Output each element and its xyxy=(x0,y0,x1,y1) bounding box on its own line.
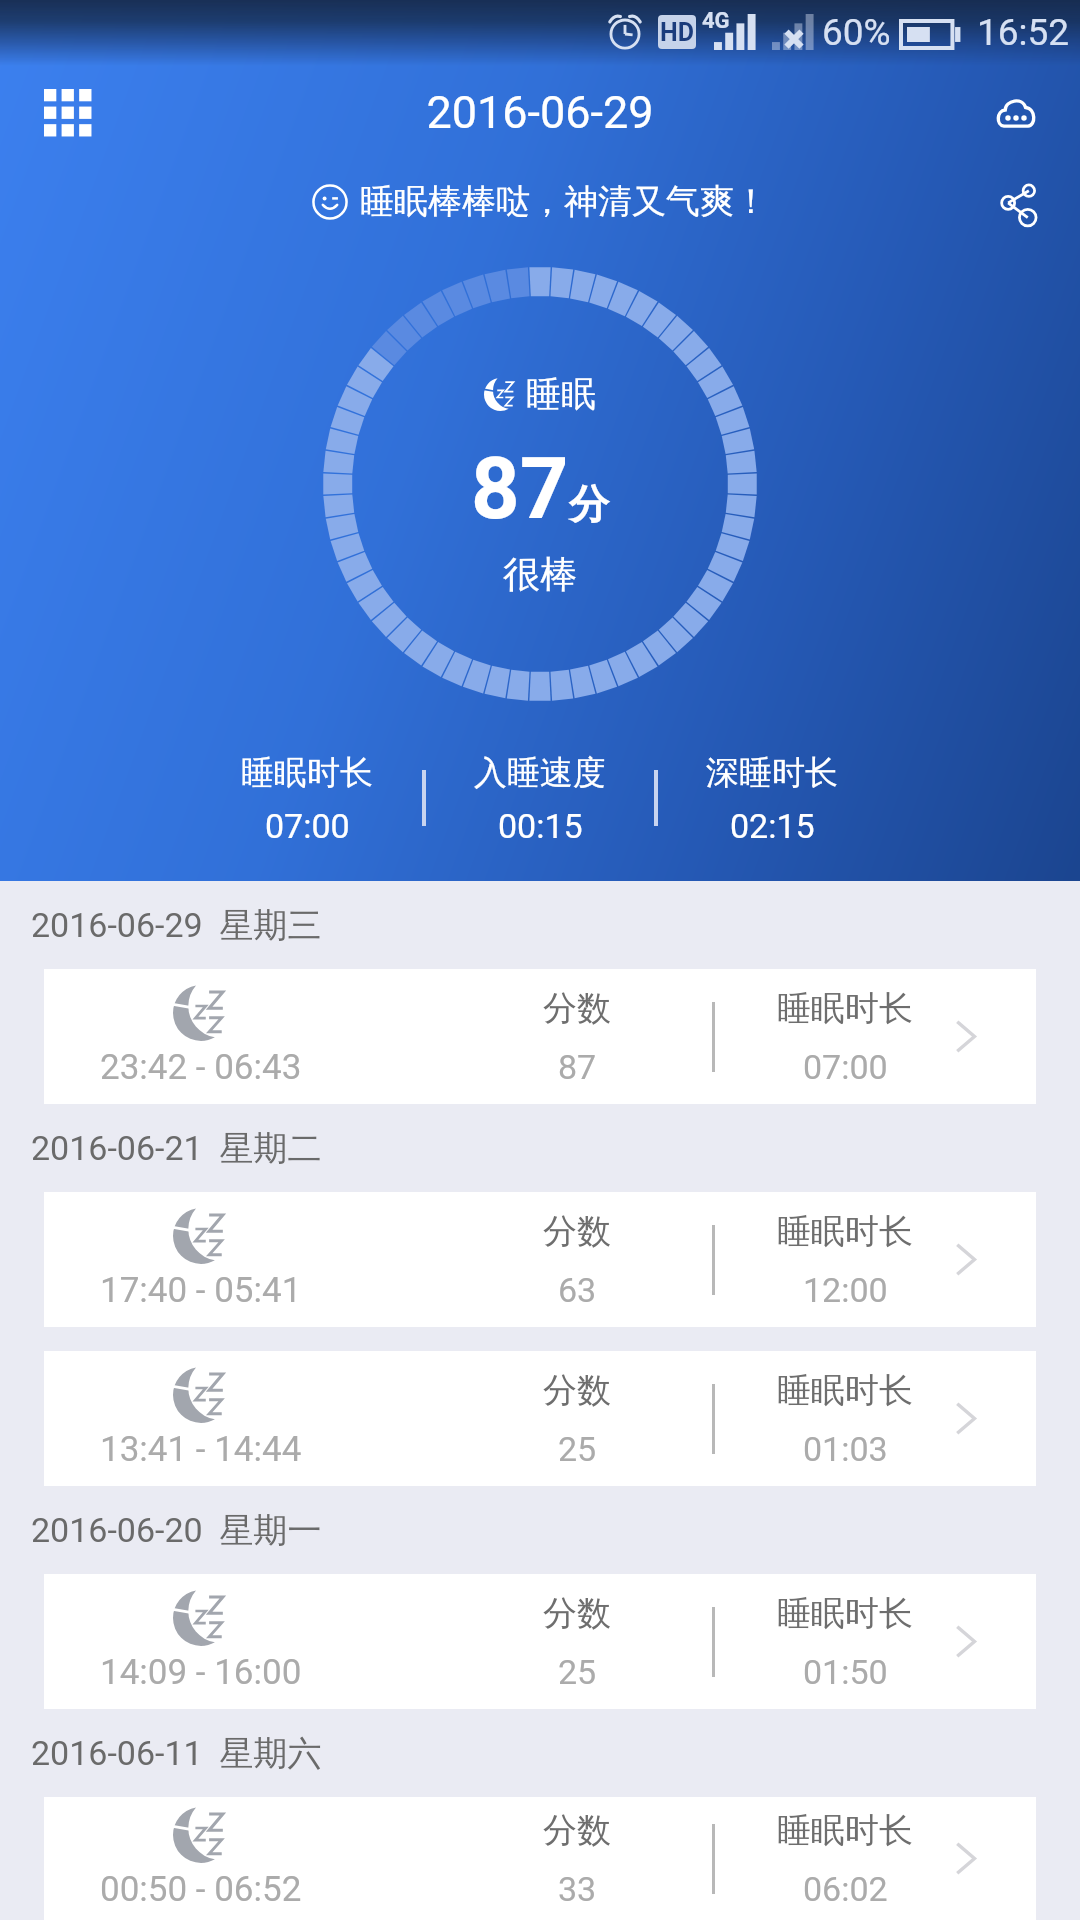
staticText: 分 xyxy=(569,479,609,529)
button[interactable]: 00:50 - 06:52 xyxy=(44,1797,1036,1920)
staticText: 睡眠时长 xyxy=(777,1809,913,1852)
staticText: 睡眠时长 xyxy=(777,987,913,1030)
staticText: 分数 xyxy=(543,1592,611,1635)
button[interactable]: 13:41 - 14:44 xyxy=(44,1351,1036,1486)
staticText: 02:15 xyxy=(730,806,815,846)
staticText: 13:41 - 14:44 xyxy=(100,1429,302,1470)
staticText: HD xyxy=(660,18,694,47)
staticText: 25 xyxy=(558,1429,597,1469)
staticText: 12:00 xyxy=(803,1270,888,1310)
staticText: 07:00 xyxy=(803,1047,888,1087)
staticText: 4G xyxy=(702,8,730,34)
staticText: 17:40 - 05:41 xyxy=(100,1270,302,1311)
staticText: 入睡速度 xyxy=(474,752,606,794)
staticText: 深睡时长 xyxy=(706,752,838,794)
button[interactable]: 23:42 - 06:43 xyxy=(44,969,1036,1104)
staticText: 23:42 - 06:43 xyxy=(100,1047,302,1088)
staticText: 睡眠 xyxy=(526,372,596,416)
button[interactable]: Apps xyxy=(20,65,116,161)
staticText: 00:15 xyxy=(498,806,583,846)
staticText: 87 xyxy=(558,1047,597,1087)
staticText: 16:52 xyxy=(977,11,1070,54)
staticText: 2016-06-20 星期一 xyxy=(31,1509,322,1552)
staticText: 00:50 - 06:52 xyxy=(100,1869,302,1910)
button[interactable]: Cloud sync xyxy=(971,67,1061,157)
button[interactable]: 17:40 - 05:41 xyxy=(44,1192,1036,1327)
button[interactable]: 14:09 - 16:00 xyxy=(44,1574,1036,1709)
staticText: 2016-06-11 星期六 xyxy=(31,1732,322,1775)
staticText: 分数 xyxy=(543,1369,611,1412)
staticText: 分数 xyxy=(543,987,611,1030)
staticText: 63 xyxy=(558,1270,597,1310)
staticText: 2016-06-21 星期二 xyxy=(31,1127,322,1170)
staticText: 14:09 - 16:00 xyxy=(100,1652,302,1693)
staticText: 很棒 xyxy=(503,551,577,598)
staticText: 2016-06-29 xyxy=(0,86,1080,139)
staticText: 87 xyxy=(471,439,569,539)
staticText: 分数 xyxy=(543,1210,611,1253)
staticText: 01:03 xyxy=(803,1429,888,1469)
button[interactable]: Share xyxy=(973,160,1063,250)
staticText: 睡眠棒棒哒，神清又气爽！ xyxy=(360,180,768,223)
staticText: 07:00 xyxy=(265,806,350,846)
staticText: 2016-06-29 星期三 xyxy=(31,904,322,947)
staticText: 25 xyxy=(558,1652,597,1692)
staticText: 06:02 xyxy=(803,1869,888,1909)
staticText: 分数 xyxy=(543,1809,611,1852)
staticText: 60% xyxy=(822,11,891,54)
staticText: 睡眠时长 xyxy=(241,752,373,794)
staticText: 01:50 xyxy=(803,1652,888,1692)
staticText: 睡眠时长 xyxy=(777,1369,913,1412)
staticText: 睡眠时长 xyxy=(777,1592,913,1635)
staticText: 33 xyxy=(558,1869,597,1909)
staticText: 睡眠时长 xyxy=(777,1210,913,1253)
